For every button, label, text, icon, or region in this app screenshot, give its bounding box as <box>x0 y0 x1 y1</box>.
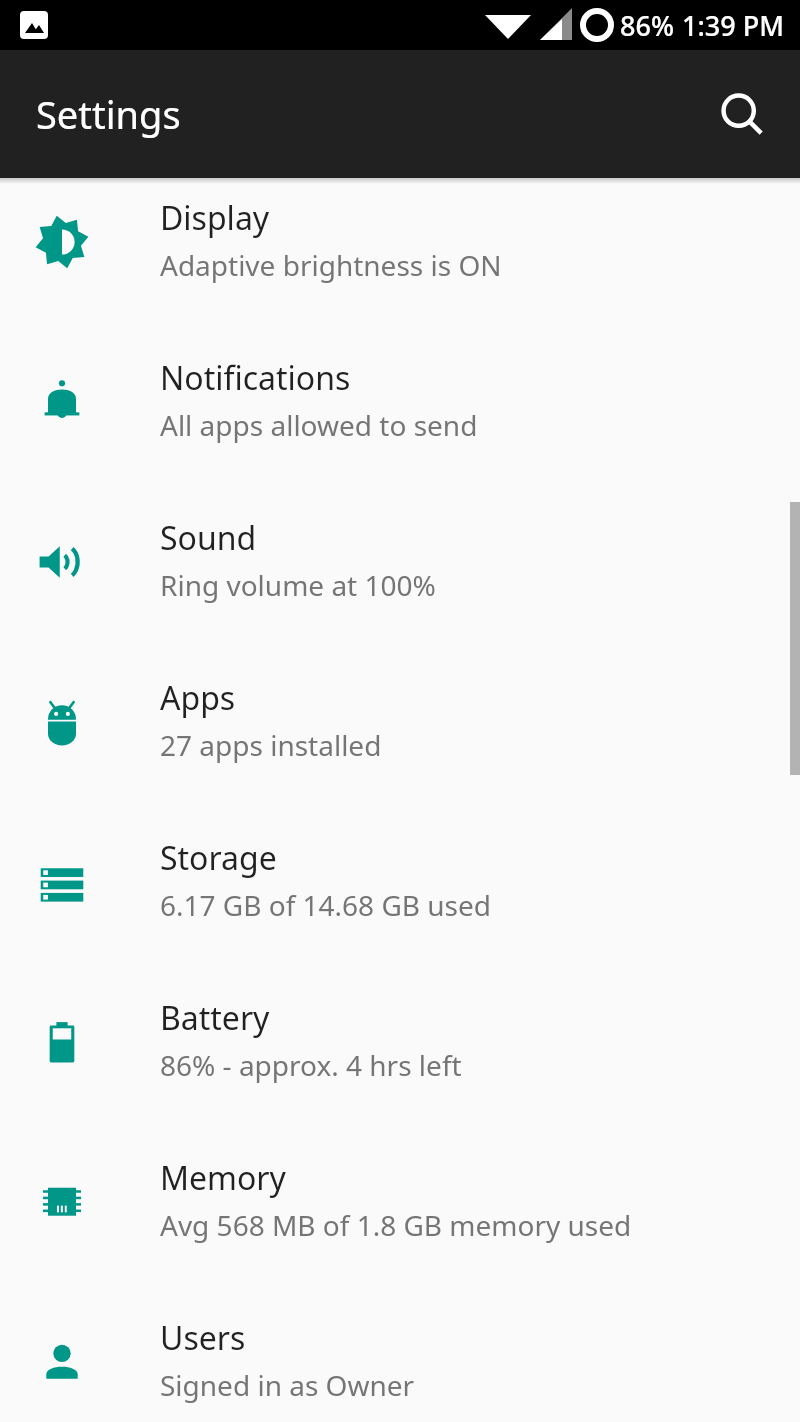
staticText: 6.17 GB of 14.68 GB used <box>160 886 491 924</box>
staticText: Ring volume at 100% <box>160 566 436 604</box>
staticText: Memory <box>160 1156 286 1200</box>
button[interactable]: Search <box>706 78 778 150</box>
staticText: Sound <box>160 516 257 560</box>
staticText: Apps <box>160 676 236 720</box>
staticText: Storage <box>160 836 277 880</box>
button[interactable]: Display <box>0 178 800 338</box>
button[interactable]: Storage <box>0 818 800 978</box>
staticText: Display <box>160 196 270 240</box>
button[interactable]: Battery <box>0 978 800 1138</box>
staticText: All apps allowed to send <box>160 406 478 444</box>
staticText: Battery <box>160 996 270 1040</box>
staticText: 1:39 PM <box>682 7 784 44</box>
button[interactable]: Sound <box>0 498 800 658</box>
button[interactable]: Users <box>0 1298 800 1422</box>
staticText: Avg 568 MB of 1.8 GB memory used <box>160 1206 632 1244</box>
button[interactable]: Apps <box>0 658 800 818</box>
staticText: 86% <box>620 7 674 44</box>
button[interactable]: Memory <box>0 1138 800 1298</box>
staticText: Notifications <box>160 356 351 400</box>
staticText: Settings <box>36 88 181 140</box>
staticText: Signed in as Owner <box>160 1366 415 1404</box>
staticText: Adaptive brightness is ON <box>160 246 502 284</box>
staticText: 86% - approx. 4 hrs left <box>160 1046 462 1084</box>
staticText: 27 apps installed <box>160 726 382 764</box>
button[interactable]: Notifications <box>0 338 800 498</box>
staticText: Users <box>160 1316 246 1360</box>
